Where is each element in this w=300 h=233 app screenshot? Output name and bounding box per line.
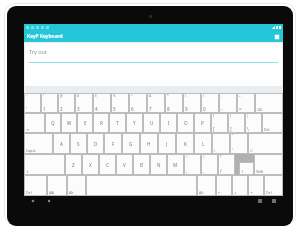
button[interactable]: + <box>237 93 255 113</box>
button[interactable]: K <box>176 133 194 154</box>
staticText: ] <box>230 126 232 132</box>
staticText: ? <box>220 155 222 159</box>
staticText: ← <box>218 191 221 195</box>
button[interactable]: ? <box>218 154 235 175</box>
staticText: 3 <box>77 106 80 112</box>
staticText: ; <box>214 147 216 153</box>
button[interactable]: A <box>53 133 70 154</box>
staticText: & <box>149 94 152 98</box>
button[interactable]: ~ <box>24 93 41 113</box>
button[interactable]: ⏎ <box>248 133 283 154</box>
button[interactable]: → <box>248 175 264 196</box>
staticText: K <box>184 141 187 147</box>
button[interactable]: % <box>111 93 129 113</box>
button[interactable]: E <box>77 113 93 133</box>
button[interactable]: } <box>228 113 245 133</box>
staticText: Try out <box>29 48 48 55</box>
button[interactable]: ⇧ <box>24 154 65 175</box>
staticText: { <box>213 114 215 118</box>
button[interactable]: " <box>230 133 248 154</box>
button[interactable]: ↑ <box>239 162 254 175</box>
button[interactable]: S <box>70 133 87 154</box>
button[interactable]: Home <box>47 199 51 203</box>
button[interactable]: Keyboard settings <box>274 34 280 40</box>
button[interactable]: O <box>177 113 194 133</box>
button[interactable]: : <box>212 133 230 154</box>
button[interactable]: H <box>140 133 158 154</box>
button[interactable]: ! <box>41 93 58 113</box>
button[interactable]: { <box>211 113 228 133</box>
button[interactable]: | <box>245 113 262 133</box>
button[interactable]: Ctrl <box>264 175 283 196</box>
staticText: $ <box>95 94 97 98</box>
button[interactable]: $ <box>93 93 111 113</box>
button[interactable]: * <box>165 93 183 113</box>
button[interactable]: Alt <box>67 175 86 196</box>
button[interactable]: Alt <box>197 175 216 196</box>
button[interactable]: X <box>82 154 99 175</box>
button[interactable]: ↓ <box>232 175 248 196</box>
button[interactable]: N <box>150 154 167 175</box>
staticText: KeyP Keyboard <box>27 33 63 40</box>
staticText: @ <box>60 94 63 98</box>
button[interactable]: & <box>147 93 165 113</box>
button[interactable]: Shift <box>254 154 283 175</box>
button[interactable]: Z <box>65 154 82 175</box>
button[interactable]: F <box>104 133 122 154</box>
staticText: ' <box>232 147 234 153</box>
staticText: ⏎ <box>250 149 253 153</box>
button[interactable]: _ <box>219 93 237 113</box>
button[interactable]: R <box>93 113 109 133</box>
button[interactable]: J <box>158 133 176 154</box>
button[interactable]: W <box>61 113 77 133</box>
button[interactable]: Ctrl <box>24 175 47 196</box>
button[interactable]: @ <box>58 93 75 113</box>
staticText: B <box>140 162 143 168</box>
staticText: 6 <box>131 106 134 112</box>
button[interactable]: Q <box>45 113 61 133</box>
button[interactable]: > <box>201 154 218 175</box>
button[interactable]: ← <box>216 175 232 196</box>
button[interactable]: L <box>194 133 212 154</box>
staticText: C <box>106 162 109 168</box>
button[interactable]: Back <box>31 199 35 203</box>
button[interactable]: ( <box>183 93 201 113</box>
button[interactable]: ⌨ <box>47 175 67 196</box>
button[interactable]: B <box>133 154 150 175</box>
staticText: M <box>173 162 178 168</box>
button[interactable]: C <box>99 154 116 175</box>
staticText: G <box>129 141 133 147</box>
staticText: R <box>100 120 103 126</box>
button[interactable]: G <box>122 133 140 154</box>
button[interactable]: I <box>160 113 177 133</box>
staticText: Z <box>72 162 75 168</box>
button[interactable]: # <box>75 93 93 113</box>
staticText: ⌨ <box>49 191 54 195</box>
button[interactable]: ⇥ <box>24 113 45 133</box>
staticText: 5 <box>113 106 116 112</box>
button[interactable]: V <box>116 154 133 175</box>
button[interactable] <box>86 175 197 196</box>
button[interactable]: P <box>194 113 211 133</box>
staticText: Y <box>133 120 136 126</box>
staticText: 0 <box>203 106 206 112</box>
button[interactable]: Y <box>126 113 143 133</box>
button[interactable]: < <box>184 154 201 175</box>
button[interactable]: ^ <box>129 93 147 113</box>
button[interactable]: M <box>167 154 184 175</box>
button[interactable]: CapsL <box>24 133 53 154</box>
button[interactable]: D <box>87 133 104 154</box>
staticText: + <box>239 94 241 98</box>
staticText: ⇧ <box>26 170 29 174</box>
staticText: 8 <box>167 106 170 112</box>
staticText: O <box>184 120 188 126</box>
button[interactable]: T <box>109 113 126 133</box>
staticText: # <box>77 94 80 98</box>
button[interactable]: ) <box>201 93 219 113</box>
staticText: } <box>230 114 232 118</box>
button[interactable]: U <box>143 113 160 133</box>
button[interactable]: Del <box>262 113 283 133</box>
button[interactable]: ⌫ <box>255 93 283 113</box>
